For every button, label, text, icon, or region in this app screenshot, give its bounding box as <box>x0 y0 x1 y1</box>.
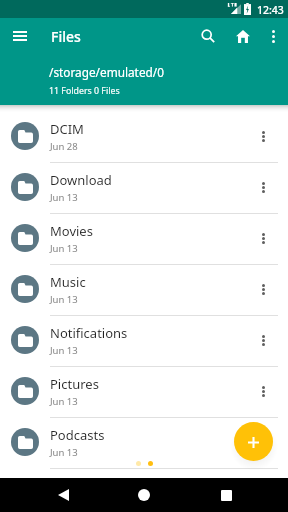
button[interactable]: Notifications <box>0 316 288 367</box>
button[interactable]: More options <box>245 220 281 256</box>
button[interactable]: More options <box>245 424 281 460</box>
staticText: Podcasts <box>50 426 105 444</box>
staticText: 11 Folders 0 Files <box>49 85 120 97</box>
button[interactable]: More options <box>245 322 281 358</box>
button[interactable]: Add <box>234 422 273 461</box>
button[interactable]: More options <box>245 271 281 307</box>
button[interactable]: Podcasts <box>0 418 288 469</box>
staticText: Files <box>51 27 81 46</box>
staticText: Jun 13 <box>50 344 78 357</box>
staticText: /storage/emulated/0 <box>49 64 164 80</box>
button[interactable]: Music <box>0 265 288 316</box>
button[interactable]: More options <box>245 373 281 409</box>
button[interactable]: Movies <box>0 214 288 265</box>
button[interactable]: DCIM <box>0 112 288 163</box>
staticText: 12:43 <box>257 3 284 17</box>
staticText: Jun 13 <box>50 446 78 459</box>
staticText: Pictures <box>50 375 99 393</box>
button[interactable]: More options <box>245 118 281 154</box>
button[interactable]: Home <box>126 478 162 512</box>
staticText: Music <box>50 273 86 291</box>
button[interactable]: Download <box>0 163 288 214</box>
staticText: Download <box>50 171 112 189</box>
button[interactable]: Recents <box>208 478 244 512</box>
staticText: Jun 13 <box>50 242 78 255</box>
staticText: Jun 13 <box>50 395 78 408</box>
button[interactable]: Home <box>229 22 257 50</box>
staticText: Notifications <box>50 324 128 342</box>
staticText: Jun 13 <box>50 293 78 306</box>
button[interactable]: More options <box>259 22 287 50</box>
button[interactable]: Back <box>45 478 81 512</box>
staticText: Jun 28 <box>50 140 78 153</box>
button[interactable]: More options <box>245 169 281 205</box>
button[interactable]: Pictures <box>0 367 288 418</box>
staticText: DCIM <box>50 120 84 138</box>
staticText: Jun 13 <box>50 191 78 204</box>
staticText: Movies <box>50 222 93 240</box>
button[interactable]: Search <box>194 22 222 50</box>
button[interactable]: Menu <box>6 22 34 50</box>
